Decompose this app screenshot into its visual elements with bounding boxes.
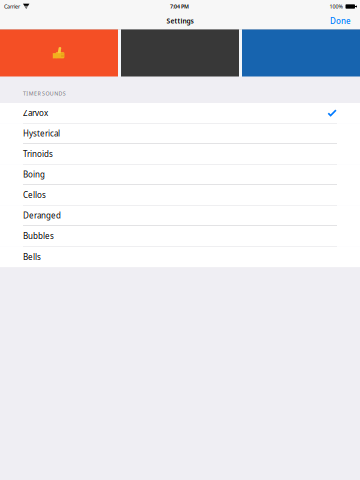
staticText: Settings [166, 17, 193, 25]
staticText: 7:04 PM [170, 3, 189, 10]
button[interactable]: Thumbs up [0, 29, 118, 76]
staticText: Carrier [4, 3, 20, 10]
button[interactable]: Boing [0, 164, 360, 185]
staticText: Bells [23, 251, 41, 262]
staticText: Zarvox [23, 108, 48, 118]
button[interactable]: Hysterical [0, 123, 360, 144]
button[interactable]: Zarvox [0, 103, 360, 123]
button[interactable]: Bubbles [0, 226, 360, 246]
button[interactable]: Done [325, 13, 356, 29]
staticText: Cellos [23, 190, 46, 200]
button[interactable]: Deranged [0, 205, 360, 226]
staticText: Done [330, 16, 351, 26]
staticText: 100% [329, 3, 342, 10]
button[interactable]: Bells [0, 246, 360, 267]
staticText: Boing [23, 169, 45, 180]
staticText: TIMER SOUNDS [23, 90, 66, 97]
staticText: Trinoids [23, 149, 53, 159]
staticText: Deranged [23, 210, 61, 221]
staticText: Bubbles [23, 231, 54, 241]
button[interactable]: Cellos [0, 185, 360, 205]
staticText: Hysterical [23, 128, 60, 139]
button[interactable]: Trinoids [0, 144, 360, 164]
